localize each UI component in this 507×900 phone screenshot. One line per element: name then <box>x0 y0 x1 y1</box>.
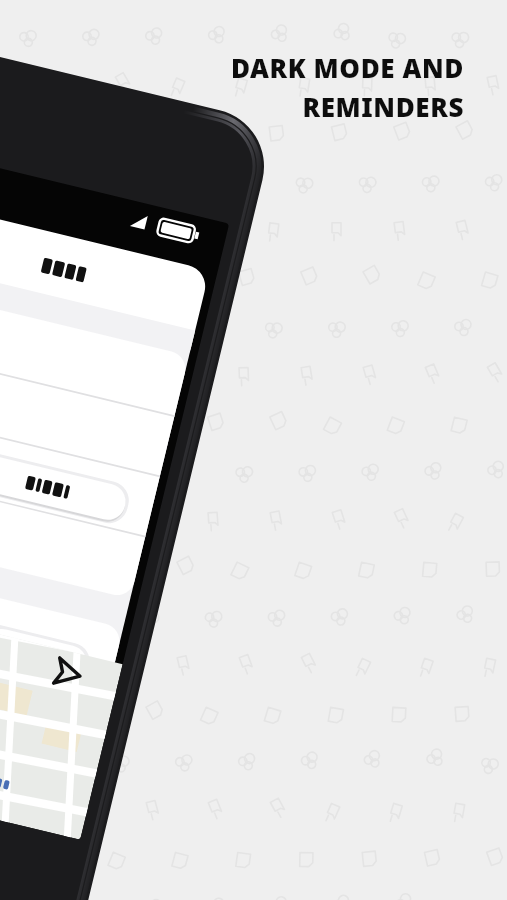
button[interactable] <box>0 520 185 580</box>
staticText: REMINDERS <box>302 89 464 124</box>
button[interactable] <box>0 440 170 490</box>
staticText: DARK MODE AND <box>230 50 464 85</box>
button[interactable] <box>20 196 110 230</box>
